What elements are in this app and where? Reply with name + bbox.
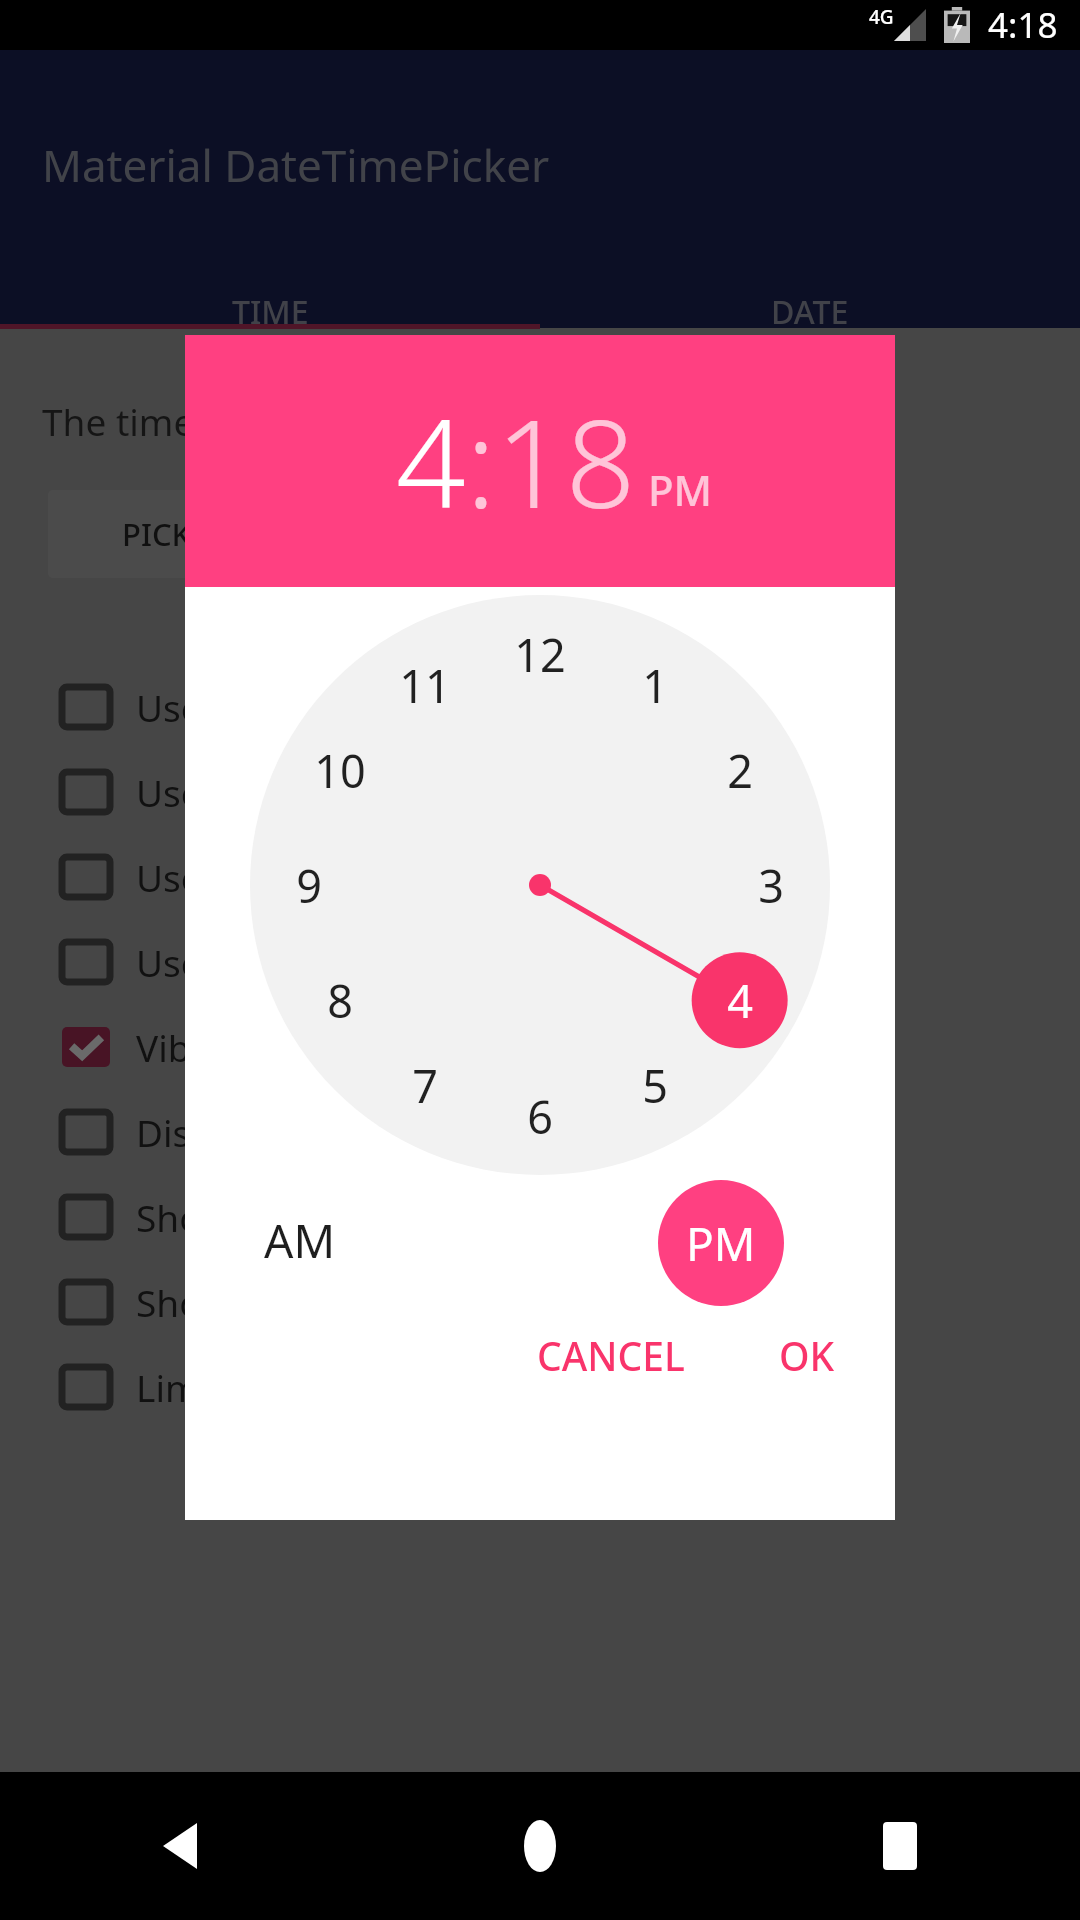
button[interactable]: 9 [263, 849, 355, 921]
staticText: 4:18 [988, 1, 1058, 49]
staticText: Material DateTimePicker [42, 135, 550, 195]
button[interactable]: CANCEL [521, 1307, 701, 1403]
button[interactable]: 10 [294, 734, 386, 806]
staticText: 2 [727, 740, 753, 801]
button[interactable]: 3 [725, 849, 817, 921]
staticText: AM [264, 1209, 336, 1272]
staticText: PM [686, 1212, 756, 1275]
button[interactable]: AM [225, 1185, 375, 1295]
staticText: 10 [314, 740, 366, 801]
button[interactable]: Vibrate [0, 1004, 1080, 1089]
button[interactable]: 11 [379, 649, 471, 721]
staticText: 9 [296, 855, 322, 916]
staticText: CANCEL [537, 1329, 685, 1382]
staticText: Limit selectable times [136, 1362, 512, 1412]
staticText: PM [648, 461, 713, 518]
staticText: 12 [514, 624, 566, 685]
button[interactable]: Recent apps [720, 1772, 1080, 1920]
staticText: 4G [869, 4, 894, 30]
staticText: Use custom highlighted days [136, 767, 640, 817]
button[interactable]: OK [763, 1307, 851, 1403]
button[interactable]: Dismiss on pause [0, 1089, 1080, 1174]
staticText: : [466, 378, 496, 544]
button[interactable]: 4 [396, 378, 466, 544]
button[interactable]: PM [648, 461, 713, 518]
button[interactable]: 12 [494, 618, 586, 690]
button[interactable]: Home [360, 1772, 720, 1920]
staticText: 6 [527, 1086, 553, 1147]
button[interactable]: Use dark theme [0, 919, 1080, 1004]
button[interactable]: 2 [694, 734, 786, 806]
staticText: 11 [399, 655, 451, 716]
staticText: Use dark theme [136, 937, 412, 987]
button[interactable]: PICK TIME [48, 490, 348, 578]
staticText: 18 [496, 378, 636, 544]
staticText: Dismiss on pause [136, 1107, 440, 1157]
button[interactable]: 7 [379, 1049, 471, 1121]
staticText: TIME [232, 290, 309, 334]
button[interactable]: Show seconds picker [0, 1259, 1080, 1344]
button[interactable]: 8 [294, 964, 386, 1036]
staticText: Show title [136, 1192, 307, 1242]
staticText: Show seconds picker [136, 1277, 498, 1327]
staticText: DATE [771, 290, 849, 334]
button[interactable]: Show title [0, 1174, 1080, 1259]
staticText: 3 [758, 855, 784, 916]
button[interactable]: Use custom highlighted days [0, 749, 1080, 834]
staticText: 1 [642, 655, 668, 716]
button[interactable]: 4 [694, 964, 786, 1036]
button[interactable]: Limit selectable times [0, 1344, 1080, 1429]
staticText: The time is 4:18 PM [42, 396, 380, 446]
button[interactable]: Use version 2 layout [0, 834, 1080, 919]
button[interactable]: TIME [0, 290, 540, 334]
staticText: 4 [396, 378, 466, 544]
staticText: OK [779, 1329, 835, 1382]
staticText: 4 [727, 970, 753, 1031]
button[interactable]: PM [658, 1180, 784, 1306]
staticText: Use custom invalid days [136, 682, 554, 732]
staticText: 8 [327, 970, 353, 1031]
staticText: PICK TIME [122, 513, 274, 555]
staticText: 7 [412, 1055, 438, 1116]
button[interactable]: 6 [494, 1080, 586, 1152]
button[interactable]: 1 [609, 649, 701, 721]
button[interactable]: DATE [540, 290, 1080, 334]
staticText: 5 [642, 1055, 668, 1116]
staticText: Use version 2 layout [136, 852, 487, 902]
button[interactable]: Back [0, 1772, 360, 1920]
staticText: Vibrate [136, 1022, 261, 1072]
button[interactable]: 5 [609, 1049, 701, 1121]
button[interactable]: 18 [496, 378, 636, 544]
button[interactable]: Use custom invalid days [0, 664, 1080, 749]
